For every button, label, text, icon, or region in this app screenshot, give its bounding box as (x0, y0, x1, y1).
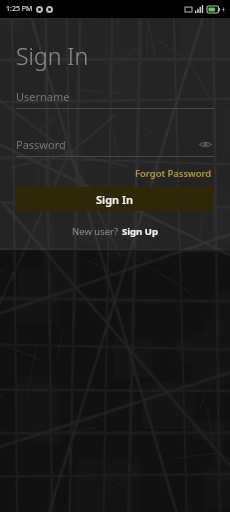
button[interactable]: Forgot Password (133, 165, 214, 182)
staticText: New user? (72, 225, 121, 238)
button[interactable]: Sign In (16, 187, 214, 211)
staticText: Sign In (16, 40, 89, 71)
staticText: Sign Up (122, 225, 158, 238)
staticText: Forgot Password (135, 167, 212, 180)
staticText: 1:25 PM (6, 4, 33, 14)
button[interactable]: Sign Up (121, 223, 159, 240)
button[interactable]: Show password (196, 135, 214, 153)
button[interactable]: Username (16, 89, 214, 109)
button[interactable]: Password (16, 135, 214, 157)
staticText: Password (16, 137, 196, 152)
staticText: Sign In (96, 192, 134, 207)
staticText: Username (16, 89, 70, 104)
